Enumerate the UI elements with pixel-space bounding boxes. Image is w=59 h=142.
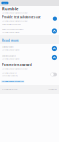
button[interactable]: Read more xyxy=(0,35,59,44)
staticText: Read more xyxy=(2,39,19,42)
button[interactable]: Menu xyxy=(1,2,8,4)
button[interactable]: Selected substance xyxy=(0,53,59,62)
button[interactable]: Provide test substances use xyxy=(0,14,59,27)
staticText: Lorem ipsum dolor sit amet consectetur xyxy=(2,12,28,14)
staticText: Lorem ipsum dolor sit amet xyxy=(2,32,19,33)
button[interactable]: Pro optional lectus dolor xyxy=(0,85,59,94)
staticText: Lorem ipsum dolor sit xyxy=(2,72,16,74)
staticText: Menu xyxy=(3,2,7,4)
button[interactable]: Active ingredient xyxy=(0,44,59,53)
staticText: Lorem ipsum dolor sit amet consectetur xyxy=(2,20,28,22)
staticText: Selected substance xyxy=(2,55,16,57)
staticText: Lorem ipsum dolor sit amet consectetur xyxy=(2,68,28,70)
staticText: Rumble xyxy=(2,6,18,11)
staticText: Lorem ipsum dolor sit amet xyxy=(2,58,19,60)
staticText: Provide test substances use xyxy=(2,15,41,19)
staticText: Lorem ipsum dolor sit amet con xyxy=(2,81,24,82)
staticText: Parameters assessed xyxy=(2,63,32,67)
staticText: Pro optional lectus dolor xyxy=(2,89,18,90)
button[interactable]: Lorem ipsum dolor sit xyxy=(0,71,59,78)
button[interactable]: Delivered vehicle and treatment xyxy=(0,27,59,35)
button[interactable]: Lorem ipsum dolor sit amet con xyxy=(0,78,59,85)
staticText: 15 adipiscing xyxy=(48,89,57,90)
staticText: adipiscing elit sed do eiusmod xyxy=(2,23,21,25)
staticText: consectetur adipiscing xyxy=(2,75,18,77)
staticText: Delivered vehicle and treatment xyxy=(2,29,23,30)
staticText: Lorem ipsum dolor sit amet xyxy=(2,49,19,51)
staticText: Active ingredient xyxy=(2,46,13,48)
